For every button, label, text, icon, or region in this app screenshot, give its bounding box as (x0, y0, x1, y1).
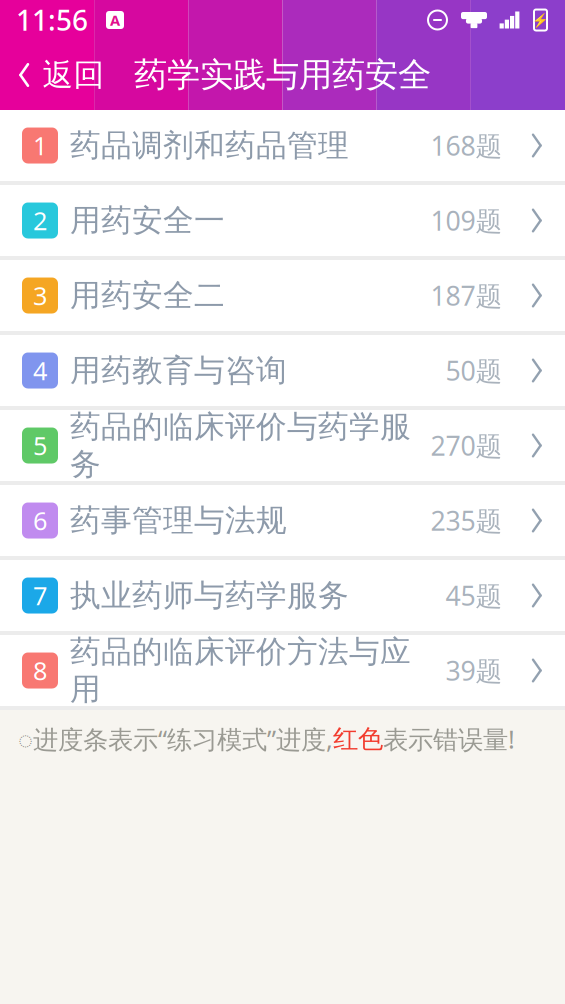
staticText: 5 (33, 429, 47, 462)
staticText: 45题 (446, 578, 503, 613)
staticText: ◌进度条表示“练习模式”进度, (18, 722, 333, 756)
staticText: 7 (33, 579, 47, 612)
button[interactable]: 5 (0, 410, 565, 481)
button[interactable]: 2 (0, 185, 565, 256)
staticText: 执业药师与药学服务 (70, 577, 349, 614)
staticText: 3 (33, 279, 47, 312)
staticText: 187题 (431, 278, 503, 313)
staticText: 药事管理与法规 (70, 502, 287, 539)
button[interactable]: 8 (0, 635, 565, 706)
staticText: 2 (33, 204, 47, 237)
button[interactable]: 3 (0, 260, 565, 331)
staticText: 109题 (431, 203, 503, 238)
button[interactable]: 6 (0, 485, 565, 556)
staticText: 红色 (333, 723, 383, 754)
staticText: 用药安全一 (70, 202, 225, 239)
staticText: 270题 (431, 428, 503, 463)
staticText: 8 (33, 654, 47, 687)
staticText: A (110, 10, 120, 30)
staticText: 药学实践与用药安全 (134, 54, 431, 95)
staticText: ⚡ (532, 12, 549, 28)
staticText: 用药教育与咨询 (70, 352, 287, 389)
staticText: 168题 (431, 128, 503, 163)
staticText: 1 (33, 129, 47, 162)
staticText: 表示错误量! (383, 722, 515, 756)
button[interactable]: 返回 (0, 40, 122, 110)
button[interactable]: 7 (0, 560, 565, 631)
staticText: 50题 (446, 353, 503, 388)
staticText: 返回 (42, 56, 104, 94)
staticText: 药品调剂和药品管理 (70, 127, 349, 164)
staticText: 235题 (431, 503, 503, 538)
staticText: 4 (33, 354, 47, 387)
staticText: 11:56 (16, 1, 88, 39)
staticText: 39题 (446, 653, 503, 688)
button[interactable]: 1 (0, 110, 565, 181)
staticText: 6 (33, 504, 47, 537)
staticText: 药品的临床评价方法与应用 (70, 633, 411, 708)
button[interactable]: 4 (0, 335, 565, 406)
staticText: 用药安全二 (70, 277, 225, 314)
staticText: 药品的临床评价与药学服务 (70, 408, 411, 483)
